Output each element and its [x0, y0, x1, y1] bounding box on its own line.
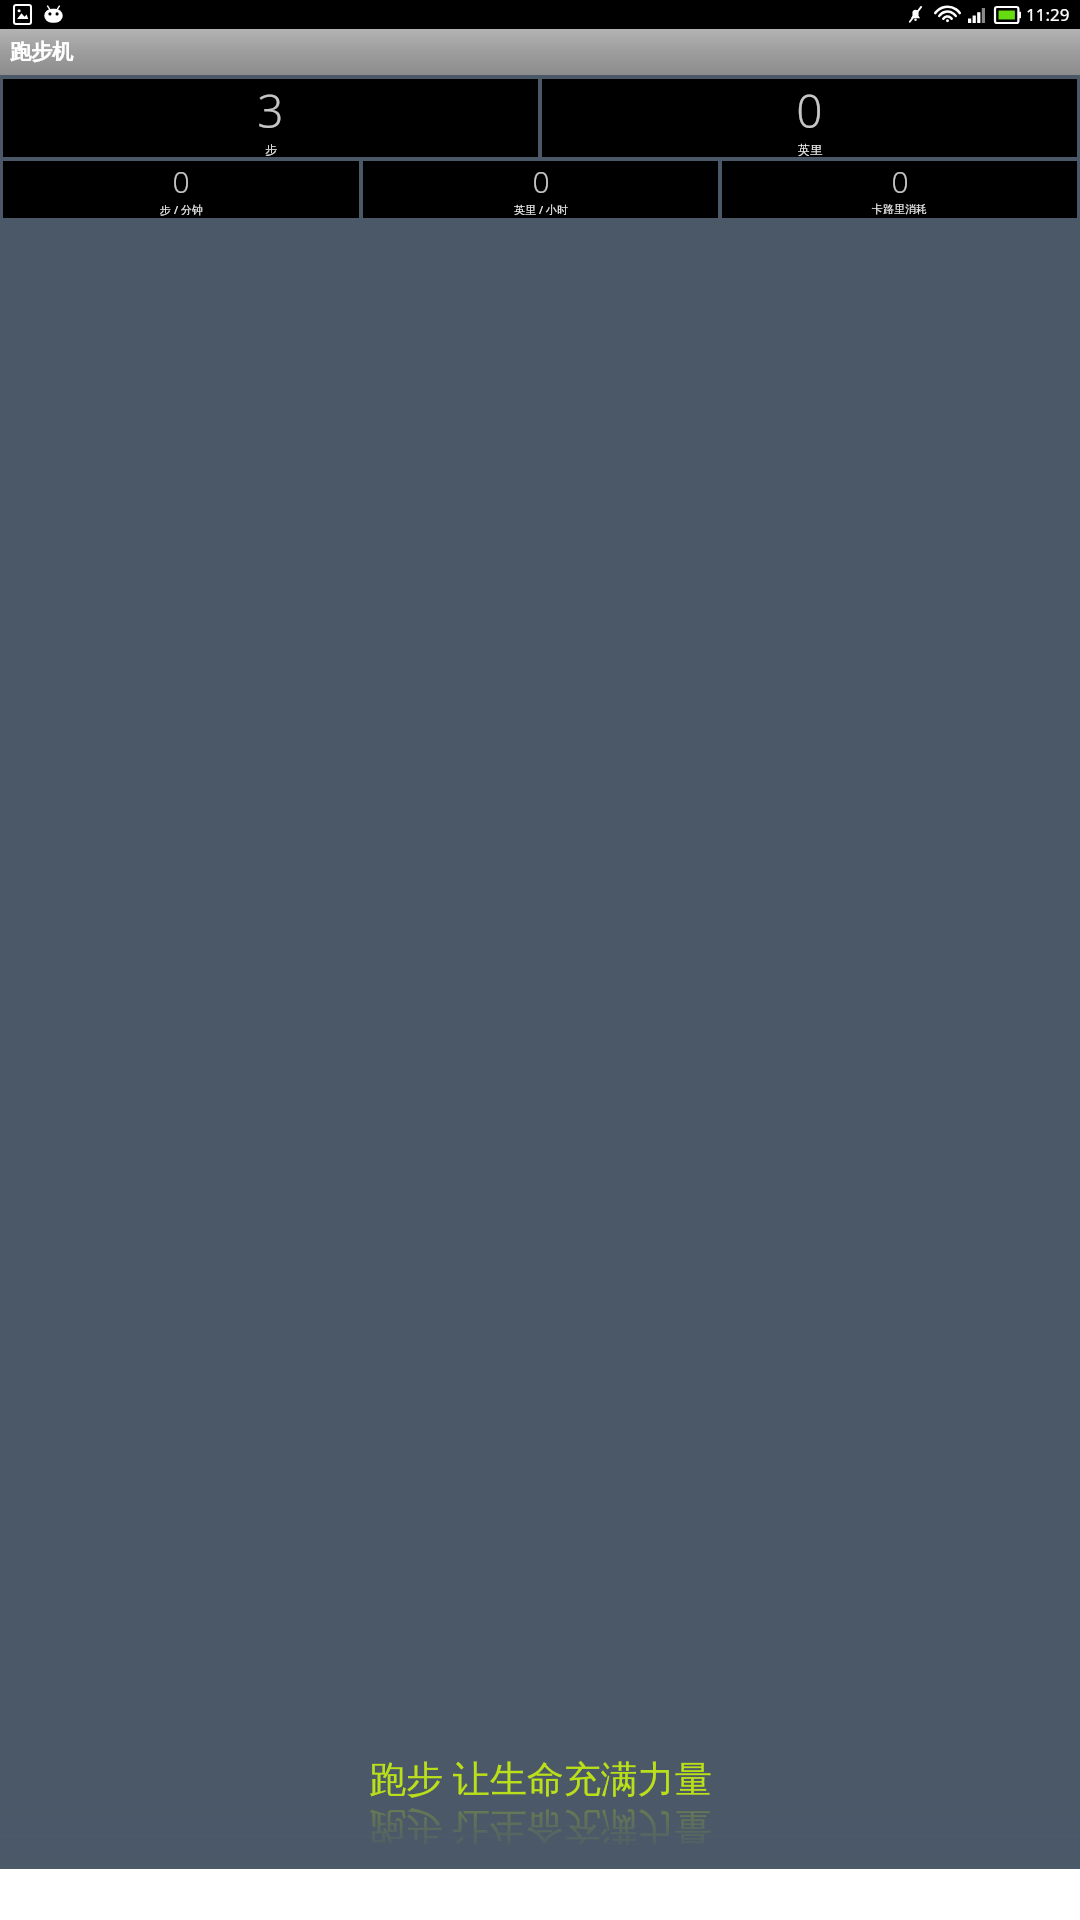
staticText: 英里 / 小时 [514, 202, 568, 217]
button[interactable]: 3 [3, 79, 538, 157]
button[interactable]: 0 [542, 79, 1077, 157]
staticText: 英里 [798, 142, 822, 157]
staticText: 0 [532, 161, 550, 202]
button[interactable]: 0 [722, 161, 1077, 218]
staticText: 跑步 让生命充满力量 [369, 1752, 712, 1803]
button[interactable]: 0 [363, 161, 718, 218]
staticText: 11:29 [1026, 3, 1070, 26]
staticText: 0 [891, 161, 909, 202]
staticText: 0 [172, 161, 190, 202]
staticText: 0 [796, 79, 823, 142]
staticText: 步 / 分钟 [160, 202, 203, 217]
staticText: 步 [265, 142, 277, 157]
button[interactable]: 0 [3, 161, 359, 218]
staticText: 跑步机 [10, 39, 73, 65]
staticText: 跑步 让生命充满力量 [369, 1803, 712, 1854]
staticText: 卡路里消耗 [872, 202, 927, 216]
staticText: 3 [257, 79, 284, 142]
